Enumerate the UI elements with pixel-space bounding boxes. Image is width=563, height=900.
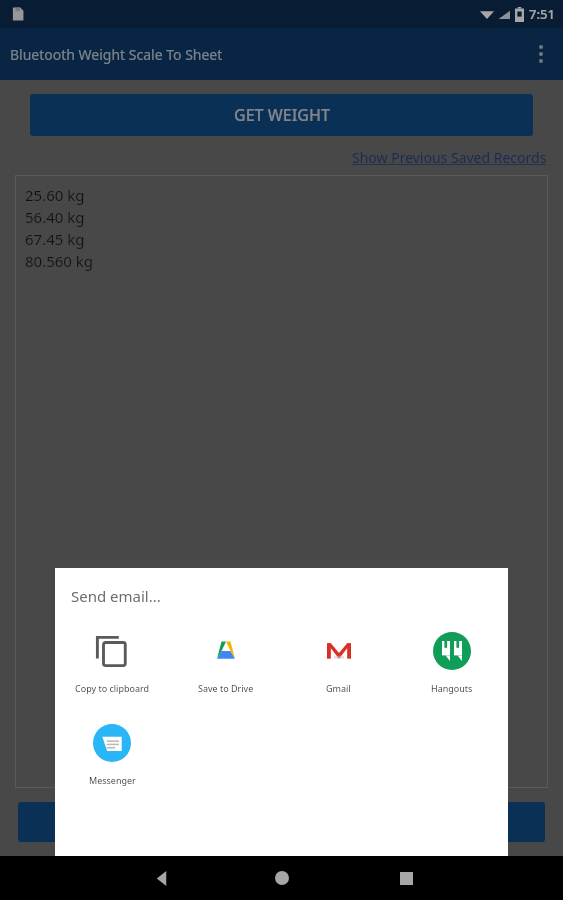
staticText: 7:51 [529, 5, 555, 23]
staticText: GET WEIGHT [234, 104, 330, 126]
staticText: Messenger [89, 774, 136, 786]
button[interactable]: Home [265, 861, 299, 895]
button[interactable]: SAVE [395, 802, 545, 842]
button[interactable]: Recents [389, 861, 423, 895]
button[interactable]: Show Previous Saved Records [352, 148, 547, 167]
staticText: 67.45 kg [25, 229, 85, 249]
button[interactable]: Copy to clipboard [55, 624, 169, 698]
button[interactable]: More options [519, 32, 563, 76]
button[interactable]: EXPORT [18, 802, 168, 842]
button[interactable]: Save to Drive [169, 624, 282, 698]
staticText: Save to Drive [198, 682, 254, 694]
staticText: Copy to clipboard [75, 682, 150, 694]
button[interactable]: Messenger [55, 716, 169, 790]
button[interactable]: Gmail [282, 624, 395, 698]
staticText: Send email... [71, 586, 161, 606]
staticText: Bluetooth Weight Scale To Sheet [10, 45, 223, 64]
staticText: Hangouts [431, 682, 473, 694]
staticText: 56.40 kg [25, 207, 85, 227]
staticText: 25.60 kg [25, 185, 85, 205]
button[interactable]: GET WEIGHT [30, 94, 533, 136]
staticText: Gmail [326, 682, 351, 694]
staticText: 80.560 kg [25, 251, 94, 271]
button[interactable]: Hangouts [395, 624, 508, 698]
button[interactable]: Back [145, 861, 179, 895]
